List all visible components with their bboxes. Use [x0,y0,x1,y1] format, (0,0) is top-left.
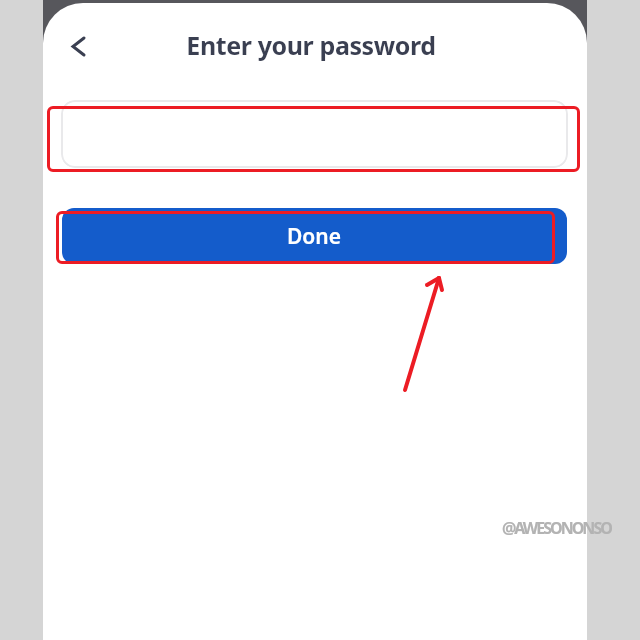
staticText: Enter your password [186,28,436,62]
button[interactable] [61,100,568,168]
staticText: Done [287,222,342,251]
button[interactable]: Done [62,208,567,264]
button[interactable] [60,27,96,65]
staticText: @AWESONONSO [502,517,611,539]
